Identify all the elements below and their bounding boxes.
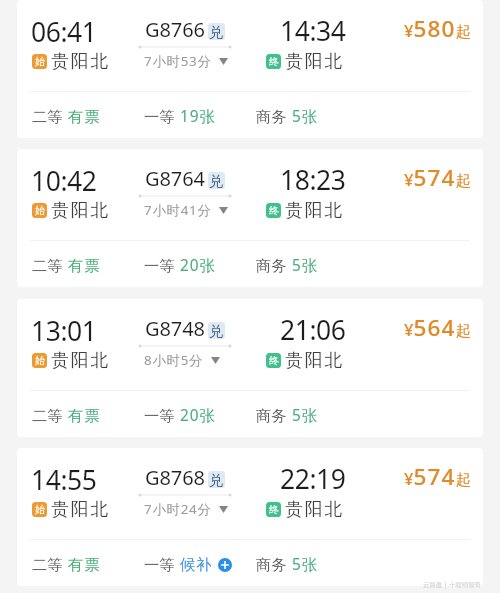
staticText: 有票 xyxy=(68,107,101,126)
staticText: 贵阳北 xyxy=(51,498,111,520)
staticText: 二等 xyxy=(32,107,63,126)
button[interactable]: 一等 xyxy=(144,106,256,127)
staticText: 始 xyxy=(35,204,45,217)
staticText: 14:55 xyxy=(31,462,97,498)
button[interactable]: 二等 xyxy=(32,256,144,275)
staticText: 终 xyxy=(269,503,279,516)
staticText: 贵阳北 xyxy=(285,199,345,221)
staticText: 兑 xyxy=(209,172,224,189)
staticText: 5张 xyxy=(292,405,318,426)
staticText: 有票 xyxy=(68,406,101,425)
staticText: 一等 xyxy=(144,406,175,425)
staticText: 兑 xyxy=(209,322,224,339)
staticText: 终 xyxy=(269,55,279,68)
button[interactable]: 10:42 xyxy=(17,149,483,287)
button[interactable]: 一等 xyxy=(144,405,256,426)
staticText: ¥564起 xyxy=(404,312,471,343)
staticText: 8小时5分 xyxy=(144,351,204,369)
button[interactable]: 06:41 xyxy=(17,0,483,138)
staticText: 商务 xyxy=(256,555,287,574)
staticText: G8768 xyxy=(145,464,205,491)
staticText: 终 xyxy=(269,354,279,367)
staticText: 终 xyxy=(269,204,279,217)
staticText: 始 xyxy=(35,55,45,68)
button[interactable]: 商务 xyxy=(256,405,483,426)
staticText: 5张 xyxy=(292,255,318,276)
staticText: 贵阳北 xyxy=(51,199,111,221)
button[interactable]: 二等 xyxy=(32,107,144,126)
staticText: G8748 xyxy=(145,315,205,342)
staticText: 二等 xyxy=(32,555,63,574)
staticText: 13:01 xyxy=(31,313,97,349)
staticText: G8766 xyxy=(145,16,205,43)
staticText: 商务 xyxy=(256,107,287,126)
staticText: 候补 xyxy=(180,555,213,574)
staticText: 二等 xyxy=(32,256,63,275)
staticText: 21:06 xyxy=(280,312,346,348)
staticText: 兑 xyxy=(209,471,224,488)
staticText: 始 xyxy=(35,354,45,367)
button[interactable]: 二等 xyxy=(32,406,144,425)
staticText: 兑 xyxy=(209,23,224,40)
staticText: 贵阳北 xyxy=(51,50,111,72)
staticText: 云路盈 | 十程明智哥 xyxy=(423,580,481,589)
staticText: 贵阳北 xyxy=(285,50,345,72)
button[interactable]: 13:01 xyxy=(17,299,483,437)
staticText: 商务 xyxy=(256,256,287,275)
staticText: 7小时53分 xyxy=(144,52,212,70)
staticText: 一等 xyxy=(144,107,175,126)
staticText: ¥574起 xyxy=(404,461,471,492)
staticText: 19张 xyxy=(180,106,216,127)
staticText: 20张 xyxy=(180,405,216,426)
staticText: 商务 xyxy=(256,406,287,425)
button[interactable]: 一等 xyxy=(144,555,256,574)
staticText: 06:41 xyxy=(31,14,97,50)
button[interactable]: 商务 xyxy=(256,106,483,127)
staticText: 一等 xyxy=(144,555,175,574)
staticText: 贵阳北 xyxy=(285,498,345,520)
staticText: 贵阳北 xyxy=(285,349,345,371)
staticText: 7小时41分 xyxy=(144,201,212,219)
button[interactable]: 商务 xyxy=(256,554,483,575)
staticText: 始 xyxy=(35,503,45,516)
button[interactable]: 二等 xyxy=(32,555,144,574)
staticText: 5张 xyxy=(292,106,318,127)
staticText: 22:19 xyxy=(280,461,346,497)
button[interactable]: 商务 xyxy=(256,255,483,276)
staticText: 10:42 xyxy=(31,163,97,199)
staticText: ¥574起 xyxy=(404,162,471,193)
staticText: 5张 xyxy=(292,554,318,575)
staticText: 20张 xyxy=(180,255,216,276)
staticText: 18:23 xyxy=(280,162,346,198)
staticText: ¥580起 xyxy=(404,13,471,44)
button[interactable]: 一等 xyxy=(144,255,256,276)
staticText: 有票 xyxy=(68,555,101,574)
staticText: 有票 xyxy=(68,256,101,275)
staticText: 7小时24分 xyxy=(144,500,212,518)
staticText: 二等 xyxy=(32,406,63,425)
staticText: G8764 xyxy=(145,165,205,192)
button[interactable]: 14:55 xyxy=(17,448,483,586)
staticText: 一等 xyxy=(144,256,175,275)
staticText: 14:34 xyxy=(280,13,346,49)
staticText: 贵阳北 xyxy=(51,349,111,371)
